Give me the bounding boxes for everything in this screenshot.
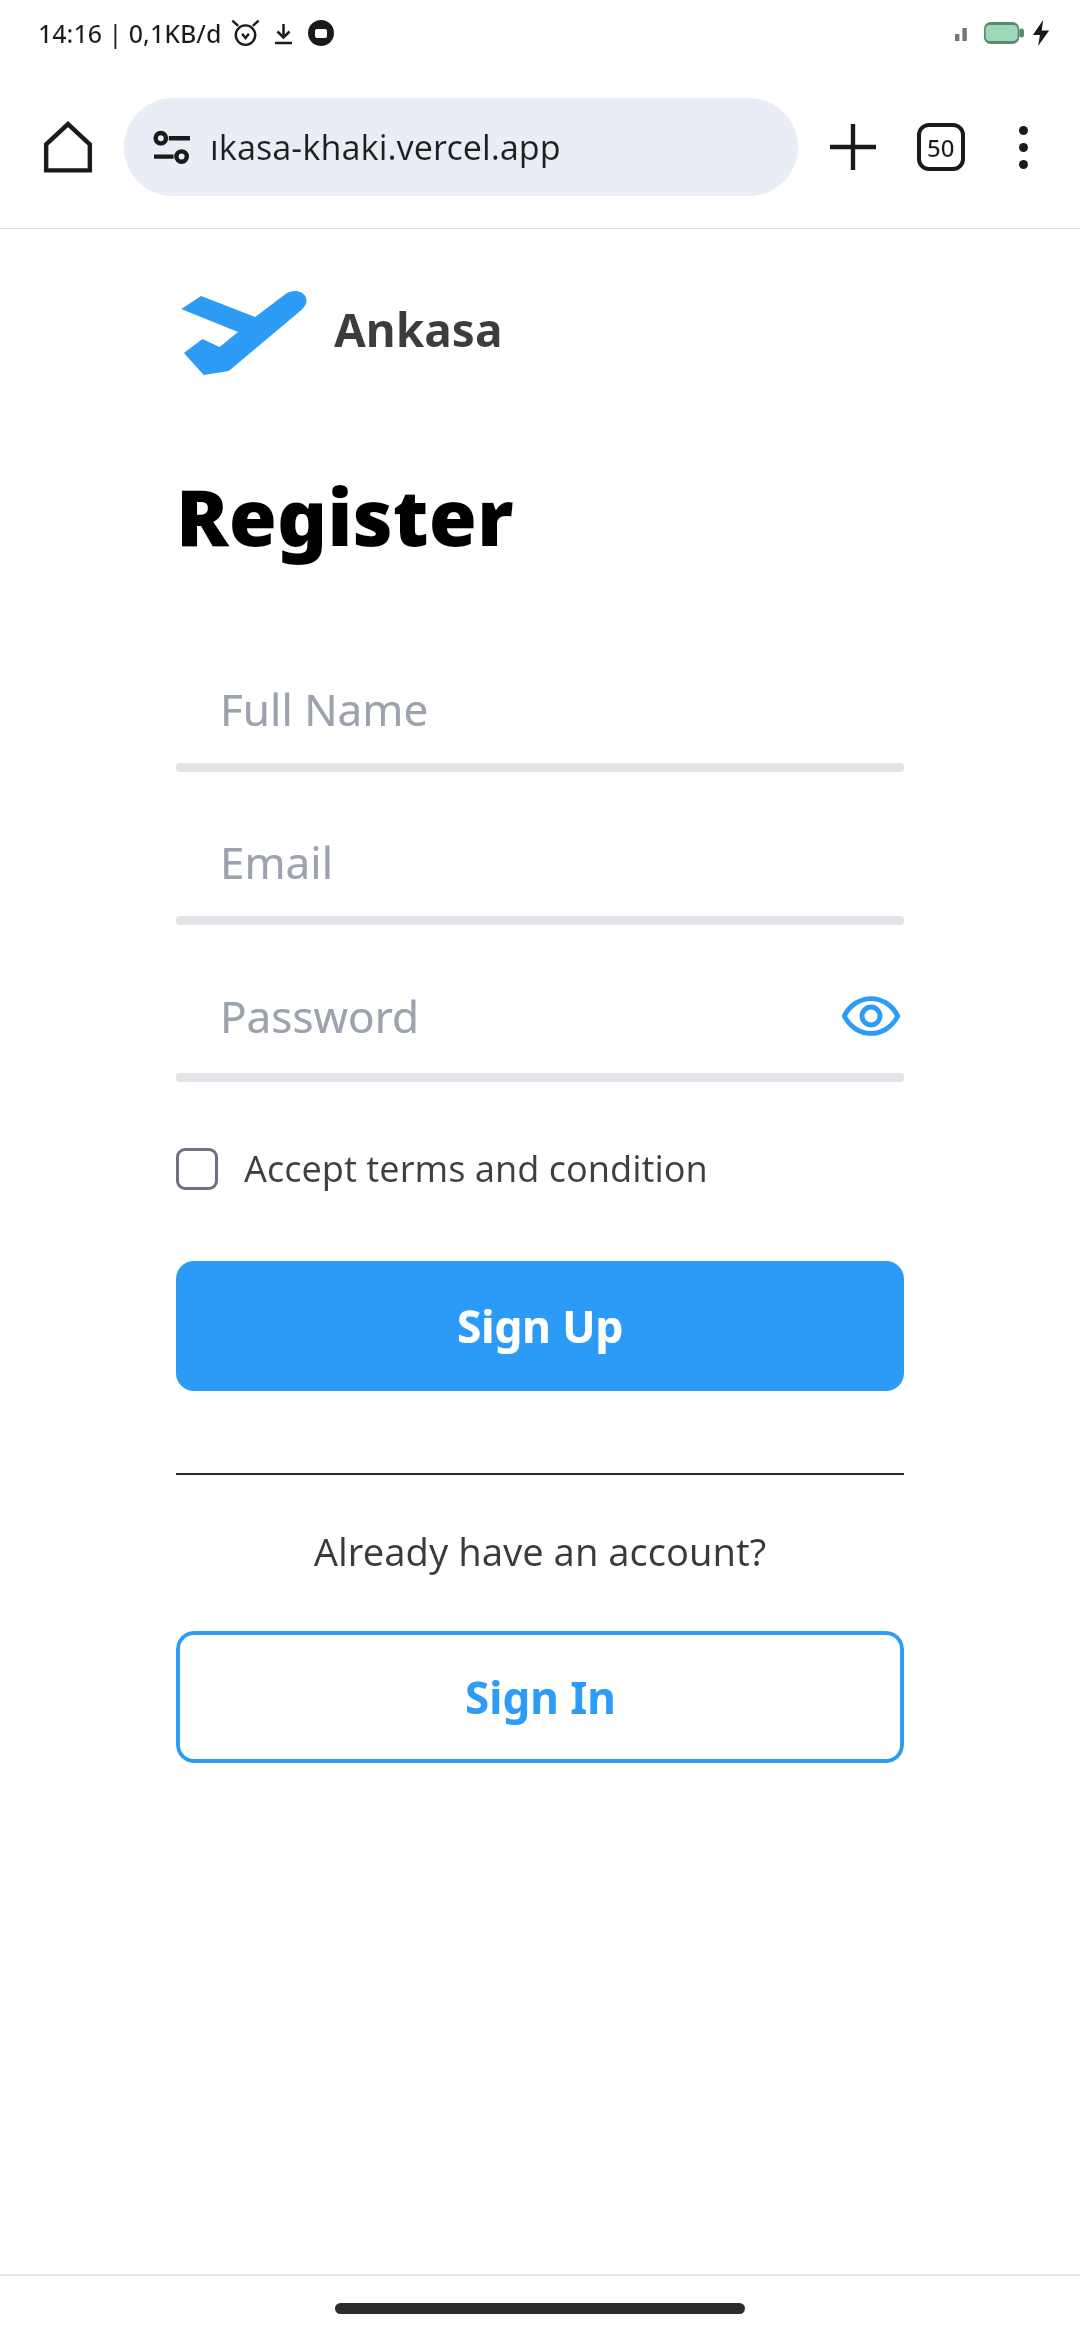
staticText: Email [220,832,904,892]
staticText: Ankasa [334,298,503,361]
staticText: ıkasa-khaki.vercel.app [210,124,561,170]
button[interactable]: Show password [838,983,904,1049]
button[interactable]: Accept terms and condition [176,1138,904,1199]
staticText: Full Name [220,679,904,739]
staticText: Sign Up [457,1296,624,1356]
staticText: Sign In [465,1667,616,1727]
button[interactable]: Password [176,983,904,1082]
button[interactable]: New tab [814,108,892,186]
staticText: Register [176,463,514,569]
button[interactable]: Home [30,109,106,185]
button[interactable]: Sign In [176,1631,904,1763]
button[interactable]: Email [176,832,904,925]
staticText: Accept terms and condition [244,1144,708,1193]
button[interactable]: ıkasa-khaki.vercel.app [124,98,798,196]
staticText: Already have an account? [176,1525,904,1577]
staticText: 14:16 | 0,1KB/d [38,16,222,50]
button[interactable]: Sign Up [176,1261,904,1391]
staticText: Password [220,986,838,1046]
button[interactable]: Full Name [176,679,904,772]
button[interactable]: More options [984,108,1062,186]
staticText: 50 [927,131,955,164]
button[interactable]: Tabs: 50 [902,108,980,186]
